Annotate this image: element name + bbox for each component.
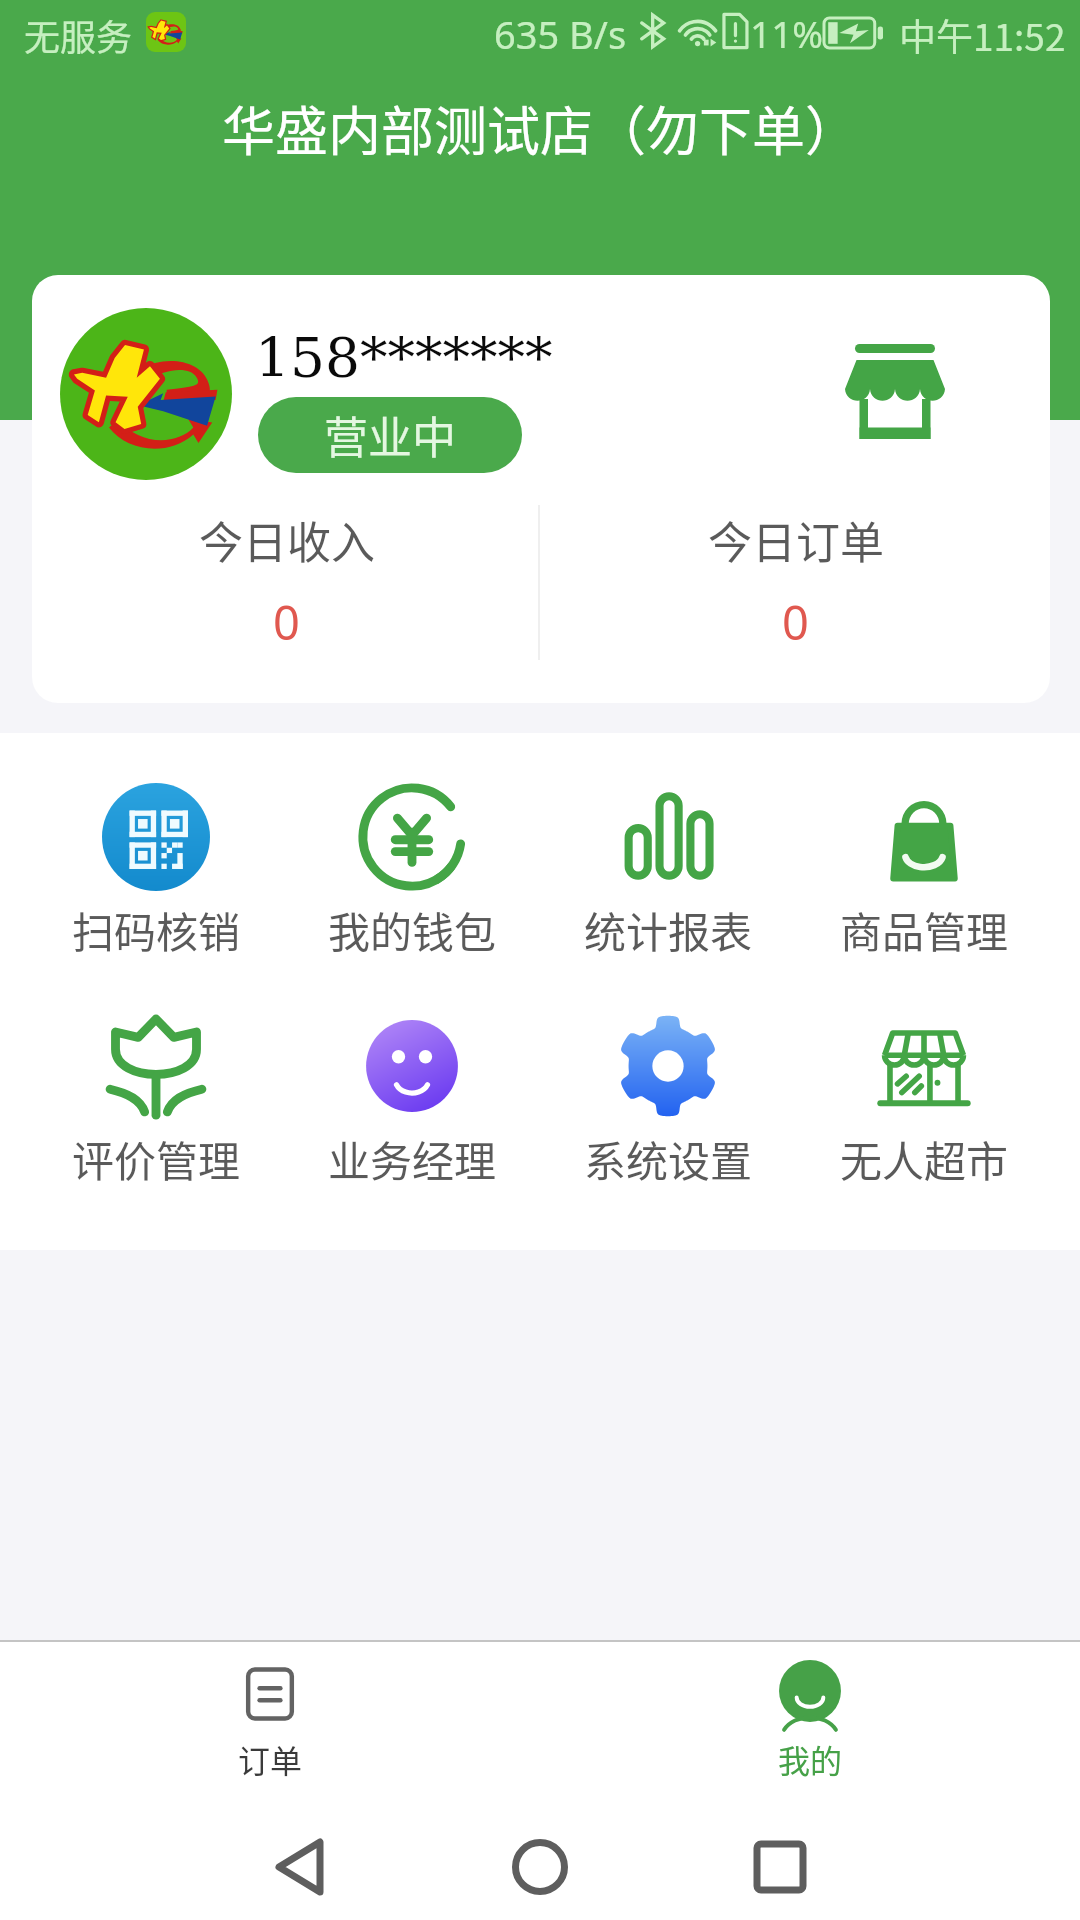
button[interactable]: 统计报表 <box>540 783 796 960</box>
staticText: 无人超市 <box>840 1128 1009 1189</box>
staticText: 华盛内部测试店（勿下单） <box>222 90 858 167</box>
staticText: 635 B/s <box>494 8 627 60</box>
button[interactable]: 无人超市 <box>796 1012 1052 1189</box>
button[interactable]: 商品管理 <box>796 783 1052 960</box>
staticText: 订单 <box>238 1736 303 1782</box>
button[interactable]: 扫码核销 <box>28 783 284 960</box>
staticText: 营业中 <box>324 403 456 467</box>
button[interactable]: Store <box>845 343 945 443</box>
staticText: 我的钱包 <box>328 899 497 960</box>
button[interactable]: 订单 <box>180 1642 360 1810</box>
button[interactable]: 系统设置 <box>540 1012 796 1189</box>
staticText: 158******* <box>255 326 553 390</box>
staticText: 业务经理 <box>328 1128 497 1189</box>
button[interactable]: 我的钱包 <box>284 783 540 960</box>
staticText: 11% <box>750 8 824 58</box>
button[interactable]: 评价管理 <box>28 1012 284 1189</box>
staticText: 今日收入 <box>199 508 375 572</box>
button[interactable]: Shop logo <box>60 308 232 480</box>
staticText: 评价管理 <box>72 1128 241 1189</box>
staticText: 中午11:52 <box>899 8 1066 62</box>
staticText: 系统设置 <box>584 1128 753 1189</box>
button[interactable]: 今日订单 <box>541 508 1050 654</box>
staticText: 0 <box>273 590 300 654</box>
staticText: 0 <box>782 590 809 654</box>
staticText: 无服务 <box>24 9 133 61</box>
button[interactable]: 今日收入 <box>32 508 541 654</box>
button[interactable]: 营业中 <box>258 397 522 473</box>
staticText: 统计报表 <box>584 899 753 960</box>
staticText: 商品管理 <box>840 899 1009 960</box>
staticText: 今日订单 <box>708 508 884 572</box>
button[interactable]: 我的 <box>720 1642 900 1810</box>
staticText: 扫码核销 <box>72 899 241 960</box>
button[interactable]: 业务经理 <box>284 1012 540 1189</box>
staticText: 我的 <box>778 1736 843 1782</box>
